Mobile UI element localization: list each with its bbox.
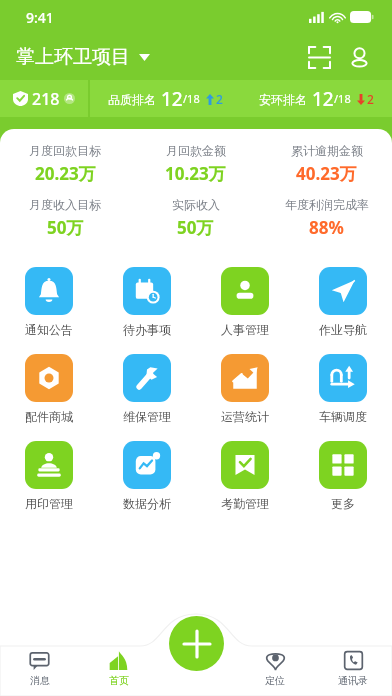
- button[interactable]: 年度利润完成率: [261, 197, 392, 239]
- staticText: 维保管理: [123, 409, 171, 424]
- button[interactable]: 考勤管理: [196, 441, 294, 511]
- staticText: 年度利润完成率: [285, 197, 369, 212]
- staticText: 数据分析: [123, 496, 171, 511]
- staticText: 218: [32, 88, 60, 110]
- button[interactable]: 用印管理: [0, 441, 98, 511]
- staticText: 2: [367, 91, 374, 107]
- button[interactable]: 通知公告: [0, 267, 98, 337]
- staticText: 安环排名: [259, 92, 307, 107]
- button[interactable]: 实际收入: [130, 197, 261, 239]
- staticText: 通知公告: [25, 322, 73, 337]
- button[interactable]: 218: [0, 80, 88, 117]
- button[interactable]: 累计逾期金额: [261, 143, 392, 185]
- staticText: 品质排名: [108, 92, 156, 107]
- button[interactable]: 数据分析: [98, 441, 196, 511]
- staticText: 掌上环卫项目: [16, 45, 130, 69]
- staticText: 50万: [177, 216, 214, 239]
- staticText: 作业导航: [319, 322, 367, 337]
- staticText: 消息: [30, 674, 50, 687]
- button[interactable]: Scan: [302, 40, 336, 74]
- staticText: 月度收入目标: [29, 197, 101, 212]
- staticText: 运营统计: [221, 409, 269, 424]
- staticText: 12: [312, 86, 334, 112]
- staticText: 10.23万: [165, 162, 226, 185]
- staticText: /18: [183, 91, 200, 106]
- button[interactable]: Add: [169, 616, 224, 671]
- button[interactable]: 月度收入目标: [0, 197, 130, 239]
- button[interactable]: 维保管理: [98, 354, 196, 424]
- staticText: 人事管理: [221, 322, 269, 337]
- button[interactable]: Account: [342, 40, 376, 74]
- button[interactable]: 安环排名: [259, 86, 374, 112]
- staticText: 88%: [309, 216, 344, 239]
- staticText: 月度回款目标: [29, 143, 101, 158]
- button[interactable]: 首页: [79, 644, 158, 692]
- button[interactable]: 月度回款目标: [0, 143, 130, 185]
- staticText: 车辆调度: [319, 409, 367, 424]
- staticText: /18: [334, 91, 351, 106]
- button[interactable]: 品质排名: [108, 86, 223, 112]
- button[interactable]: 待办事项: [98, 267, 196, 337]
- button[interactable]: 通讯录: [314, 644, 392, 692]
- staticText: 2: [216, 91, 223, 107]
- staticText: 考勤管理: [221, 496, 269, 511]
- button[interactable]: 定位: [236, 644, 314, 692]
- staticText: 40.23万: [296, 162, 357, 185]
- button[interactable]: 掌上环卫项目: [16, 45, 150, 69]
- staticText: 用印管理: [25, 496, 73, 511]
- staticText: 12: [161, 86, 183, 112]
- button[interactable]: 月回款金额: [130, 143, 261, 185]
- staticText: 50万: [47, 216, 84, 239]
- button[interactable]: 运营统计: [196, 354, 294, 424]
- button[interactable]: 作业导航: [294, 267, 392, 337]
- button[interactable]: 人事管理: [196, 267, 294, 337]
- staticText: 待办事项: [123, 322, 171, 337]
- button[interactable]: 消息: [0, 644, 79, 692]
- staticText: 配件商城: [25, 409, 73, 424]
- staticText: 20.23万: [35, 162, 96, 185]
- staticText: 累计逾期金额: [291, 143, 363, 158]
- button[interactable]: 配件商城: [0, 354, 98, 424]
- staticText: 月回款金额: [166, 143, 226, 158]
- button[interactable]: 车辆调度: [294, 354, 392, 424]
- staticText: 定位: [265, 674, 285, 687]
- button[interactable]: 更多: [294, 441, 392, 511]
- staticText: 首页: [109, 674, 129, 687]
- staticText: 实际收入: [172, 197, 220, 212]
- staticText: 通讯录: [338, 674, 368, 687]
- staticText: 9:41: [26, 8, 54, 27]
- staticText: 更多: [331, 496, 355, 511]
